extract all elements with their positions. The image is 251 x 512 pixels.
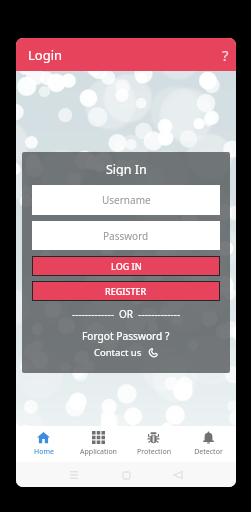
staticText: LOG IN: [111, 260, 142, 272]
staticText: Home: [34, 447, 54, 457]
button[interactable]: LOG IN: [33, 257, 219, 275]
button[interactable]: Back: [168, 465, 188, 485]
button[interactable]: REGISTER: [33, 282, 219, 300]
staticText: Detector: [194, 447, 223, 457]
button[interactable]: Forgot Password ?: [82, 327, 170, 344]
button[interactable]: Protection: [126, 431, 181, 457]
button[interactable]: Help: [215, 45, 235, 65]
button[interactable]: Username: [32, 185, 220, 215]
staticText: Protection: [137, 447, 171, 457]
button[interactable]: Home: [116, 465, 136, 485]
staticText: Application: [80, 447, 117, 457]
staticText: Sign In: [106, 161, 147, 176]
staticText: Password: [103, 229, 149, 243]
staticText: Contact us: [94, 346, 142, 359]
button[interactable]: Contact us: [94, 344, 158, 361]
button[interactable]: Detector: [181, 431, 236, 457]
staticText: Username: [102, 193, 151, 207]
staticText: REGISTER: [105, 285, 147, 297]
button[interactable]: Home: [16, 431, 71, 457]
button[interactable]: Application: [71, 431, 126, 457]
button[interactable]: Recents: [64, 465, 84, 485]
staticText: Login: [28, 46, 63, 64]
staticText: Forgot Password ?: [82, 329, 170, 343]
staticText: ------------- OR -------------: [72, 307, 181, 321]
button[interactable]: Password: [32, 221, 220, 250]
staticText: ?: [222, 45, 229, 65]
